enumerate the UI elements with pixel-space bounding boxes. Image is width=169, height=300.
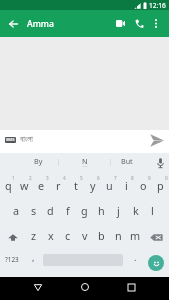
button[interactable]: h (93, 198, 110, 223)
staticText: a (13, 203, 20, 218)
button[interactable]: 7 (101, 172, 118, 198)
staticText: বাংলা (20, 136, 33, 144)
staticText: g (81, 203, 88, 218)
staticText: e (38, 178, 45, 193)
button[interactable]: , (24, 248, 43, 270)
staticText: i (125, 178, 128, 193)
button[interactable]: 3 (33, 172, 50, 198)
staticText: l (151, 203, 154, 218)
staticText: 12:16 (149, 1, 166, 10)
button[interactable]: b (93, 223, 110, 248)
staticText: 1 (12, 175, 15, 181)
button[interactable]: f (59, 198, 76, 223)
staticText: t (74, 178, 78, 193)
button[interactable]: 8 (118, 172, 135, 198)
button[interactable]: x (42, 223, 59, 248)
staticText: c (65, 228, 71, 243)
staticText: 5 (80, 175, 83, 181)
staticText: z (31, 228, 37, 243)
staticText: m (130, 228, 141, 243)
staticText: 6 (97, 175, 100, 181)
staticText: 7 (114, 175, 117, 181)
button[interactable]: ?123 (0, 248, 24, 270)
button[interactable]: 4 (50, 172, 67, 198)
button[interactable]: 6 (84, 172, 101, 198)
button[interactable]: N (59, 153, 110, 172)
staticText: N (82, 156, 88, 166)
button[interactable]: Video call (107, 10, 133, 37)
staticText: r (56, 178, 61, 193)
staticText: 3 (46, 175, 49, 181)
staticText: o (140, 178, 147, 193)
staticText: . (134, 251, 137, 263)
button[interactable]: v (76, 223, 93, 248)
button[interactable]: Shift (0, 223, 25, 248)
button[interactable]: Home (61, 277, 108, 297)
button[interactable]: l (144, 198, 161, 223)
button[interactable]: m (127, 223, 144, 248)
button[interactable]: j (110, 198, 127, 223)
button[interactable]: d (42, 198, 59, 223)
button[interactable]: Back (14, 277, 61, 297)
button[interactable]: . (123, 248, 147, 270)
button[interactable]: n (110, 223, 127, 248)
staticText: d (47, 203, 54, 218)
staticText: 2 (29, 175, 32, 181)
button[interactable]: a (8, 198, 25, 223)
button[interactable]: s (25, 198, 42, 223)
button[interactable]: By (0, 153, 58, 172)
button[interactable]: 5 (67, 172, 84, 198)
button[interactable]: 9 (135, 172, 152, 198)
button[interactable]: 0 (152, 172, 169, 198)
staticText: s (31, 203, 37, 218)
button[interactable]: k (127, 198, 144, 223)
staticText: p (157, 178, 164, 193)
button[interactable]: More options (146, 10, 165, 37)
staticText: j (117, 203, 120, 218)
staticText: 4 (63, 175, 66, 181)
button[interactable]: c (59, 223, 76, 248)
button[interactable]: Call (133, 10, 146, 37)
staticText: w (20, 178, 29, 193)
staticText: y (90, 178, 96, 193)
staticText: u (106, 178, 113, 193)
staticText: f (66, 203, 70, 218)
button[interactable]: Voice input (143, 153, 169, 172)
button[interactable]: g (76, 198, 93, 223)
staticText: 9 (148, 175, 151, 181)
button[interactable]: 1 (0, 172, 16, 198)
staticText: k (133, 203, 139, 218)
staticText: Amma (27, 18, 54, 30)
staticText: SMS (6, 137, 15, 143)
staticText: b (98, 228, 105, 243)
staticText: ?123 (5, 255, 19, 264)
staticText: , (32, 251, 35, 263)
staticText: v (82, 228, 88, 243)
button[interactable]: Send (146, 130, 168, 150)
staticText: q (5, 178, 12, 193)
button[interactable]: But (111, 153, 143, 172)
staticText: By (34, 156, 43, 166)
button[interactable]: Emoji (147, 248, 169, 274)
button[interactable]: Navigate up (0, 10, 26, 37)
button[interactable]: Backspace (144, 223, 169, 248)
staticText: 0 (165, 175, 168, 181)
staticText: x (48, 228, 54, 243)
staticText: n (115, 228, 122, 243)
staticText: 8 (131, 175, 134, 181)
staticText: h (98, 203, 105, 218)
staticText: But (121, 156, 133, 166)
button[interactable]: 2 (16, 172, 33, 198)
button[interactable]: z (25, 223, 42, 248)
button[interactable]: Recent apps (108, 277, 155, 297)
